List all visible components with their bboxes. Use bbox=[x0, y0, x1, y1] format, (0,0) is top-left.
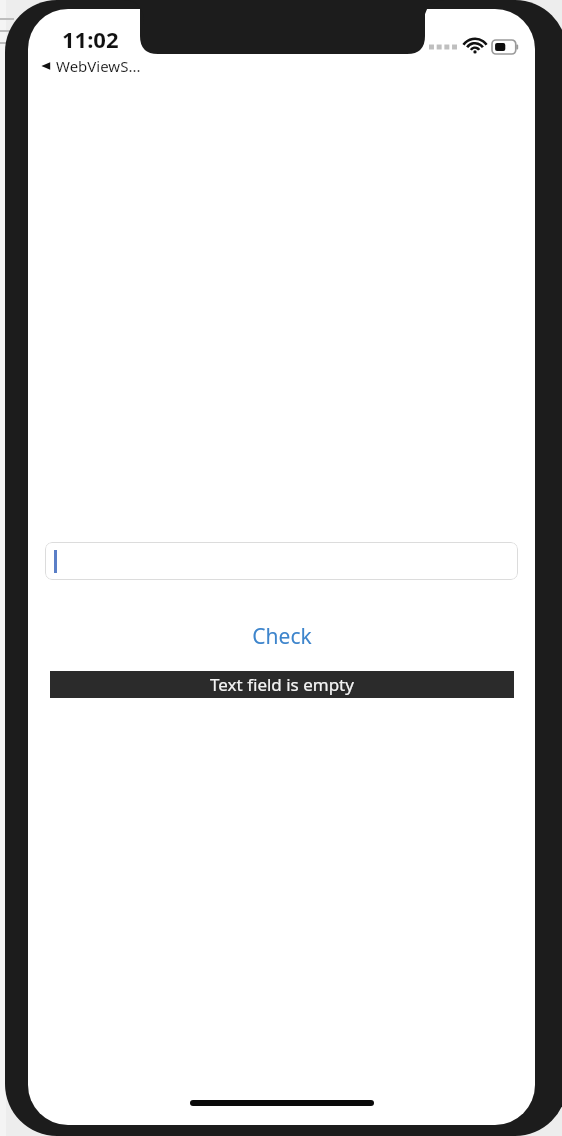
staticText: 11:02 bbox=[62, 24, 119, 54]
staticText: WebViewS... bbox=[56, 56, 141, 76]
staticText: Text field is empty bbox=[210, 673, 354, 696]
button[interactable]: Text input field bbox=[45, 542, 518, 580]
button[interactable]: Check bbox=[45, 619, 518, 653]
staticText: Check bbox=[252, 622, 312, 651]
button[interactable]: Back to WebViewSample bbox=[40, 56, 141, 76]
